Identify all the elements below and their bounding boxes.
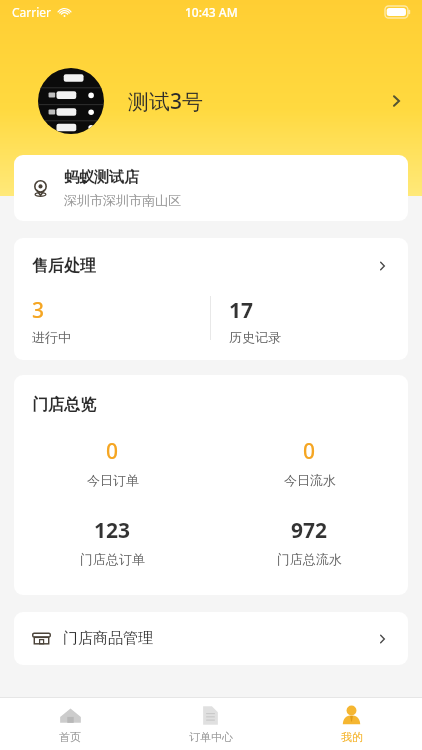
button[interactable]: Profile avatar [0,62,422,140]
button[interactable]: 订单中心 [140,698,281,750]
staticText: 历史记录 [229,329,281,345]
staticText: 进行中 [32,329,71,345]
button[interactable]: Profile avatar [38,68,104,134]
button[interactable]: 首页 [0,698,140,750]
staticText: 深圳市深圳市南山区 [64,192,181,208]
button[interactable]: 门店商品管理 [14,612,408,665]
staticText: 门店总流水 [277,551,342,567]
staticText: 972 [291,516,328,545]
staticText: 123 [94,516,131,545]
staticText: 测试3号 [128,87,204,116]
staticText: 我的 [341,730,363,744]
button[interactable]: 972 [211,516,408,567]
staticText: 门店总览 [32,395,96,415]
button[interactable]: 我的 [281,698,422,750]
button[interactable]: 门店总览 [14,375,408,595]
staticText: 门店总订单 [80,551,145,567]
button[interactable]: 0 [14,437,211,488]
staticText: 17 [229,296,254,325]
staticText: 蚂蚁测试店 [64,168,139,187]
button[interactable]: 售后处理 [14,238,408,360]
staticText: 今日流水 [284,472,336,488]
staticText: 今日订单 [87,472,139,488]
staticText: 3 [32,296,45,325]
staticText: 0 [106,437,119,466]
staticText: Carrier [12,4,52,20]
staticText: 0 [303,437,316,466]
staticText: 10:43 AM [185,4,238,20]
staticText: 门店商品管理 [63,629,153,648]
button[interactable]: 123 [14,516,211,567]
staticText: 首页 [59,730,81,744]
staticText: 售后处理 [32,256,96,276]
button[interactable]: 0 [211,437,408,488]
button[interactable]: 蚂蚁测试店 [14,155,408,221]
staticText: 订单中心 [189,730,233,744]
